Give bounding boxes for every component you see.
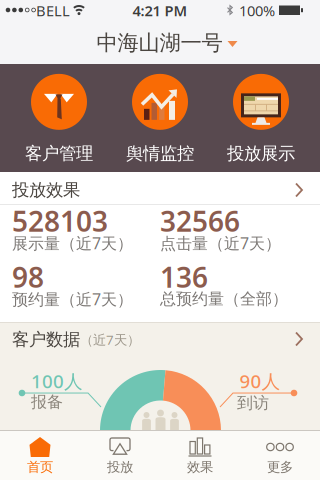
staticText: （近7天） [80, 331, 140, 348]
staticText: 投放展示 [227, 143, 295, 164]
staticText: 首页 [27, 459, 53, 475]
button[interactable]: 更多 [240, 431, 320, 480]
staticText: BELL [36, 1, 70, 20]
staticText: 报备 [31, 392, 63, 412]
button[interactable]: 中海山湖一号 [96, 30, 237, 56]
staticText: 4:21 PM [132, 1, 187, 20]
staticText: 预约量（近7天） [12, 288, 133, 310]
staticText: 客户管理 [25, 143, 93, 164]
staticText: 投放效果 [12, 179, 80, 201]
staticText: 展示量（近7天） [12, 232, 133, 254]
staticText: 投放 [107, 459, 133, 475]
button[interactable]: 首页 [0, 431, 80, 480]
staticText: 100人 [31, 369, 83, 393]
staticText: 90人 [239, 369, 280, 393]
staticText: 舆情监控 [126, 143, 194, 164]
staticText: 总预约量（全部） [160, 289, 288, 309]
staticText: 32566 [160, 202, 240, 240]
staticText: 到访 [237, 393, 269, 413]
button[interactable]: 客户数据 [0, 323, 320, 353]
staticText: 效果 [187, 459, 213, 475]
staticText: 中海山湖一号 [96, 30, 222, 56]
button[interactable]: 效果 [160, 431, 240, 480]
button[interactable]: 投放效果 [0, 172, 320, 204]
staticText: 更多 [267, 459, 293, 475]
staticText: 客户数据 [12, 329, 80, 350]
staticText: 100% [239, 1, 275, 20]
staticText: 528103 [12, 202, 108, 240]
button[interactable]: 客户管理 [25, 74, 93, 164]
staticText: 98 [12, 258, 44, 296]
button[interactable]: 投放 [80, 431, 160, 480]
staticText: 点击量（近7天） [160, 232, 281, 254]
staticText: 136 [160, 258, 208, 296]
button[interactable]: 投放展示 [227, 74, 295, 164]
button[interactable]: 舆情监控 [126, 74, 194, 164]
